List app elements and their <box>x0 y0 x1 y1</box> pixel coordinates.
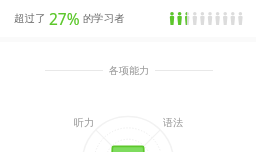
other: Ranking: 27 percent of learners <box>170 12 242 25</box>
staticText: 各项能力 <box>109 64 149 77</box>
staticText: 听力 <box>74 116 94 129</box>
staticText: 的学习者 <box>80 11 125 25</box>
staticText: 27% <box>49 8 80 29</box>
button[interactable]: Ability radar chart <box>0 80 256 152</box>
staticText: 超过了 <box>14 11 49 25</box>
staticText: 语法 <box>163 116 183 129</box>
button[interactable]: 超过了 <box>0 0 256 36</box>
